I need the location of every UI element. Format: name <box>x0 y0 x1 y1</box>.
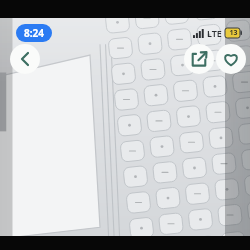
staticText: 8:24 <box>24 26 44 40</box>
button[interactable]: Share <box>184 44 214 74</box>
button[interactable]: Back <box>10 44 40 74</box>
staticText: LTE <box>207 27 222 39</box>
button[interactable]: Favorite <box>216 44 246 74</box>
staticText: 13 <box>229 28 238 38</box>
